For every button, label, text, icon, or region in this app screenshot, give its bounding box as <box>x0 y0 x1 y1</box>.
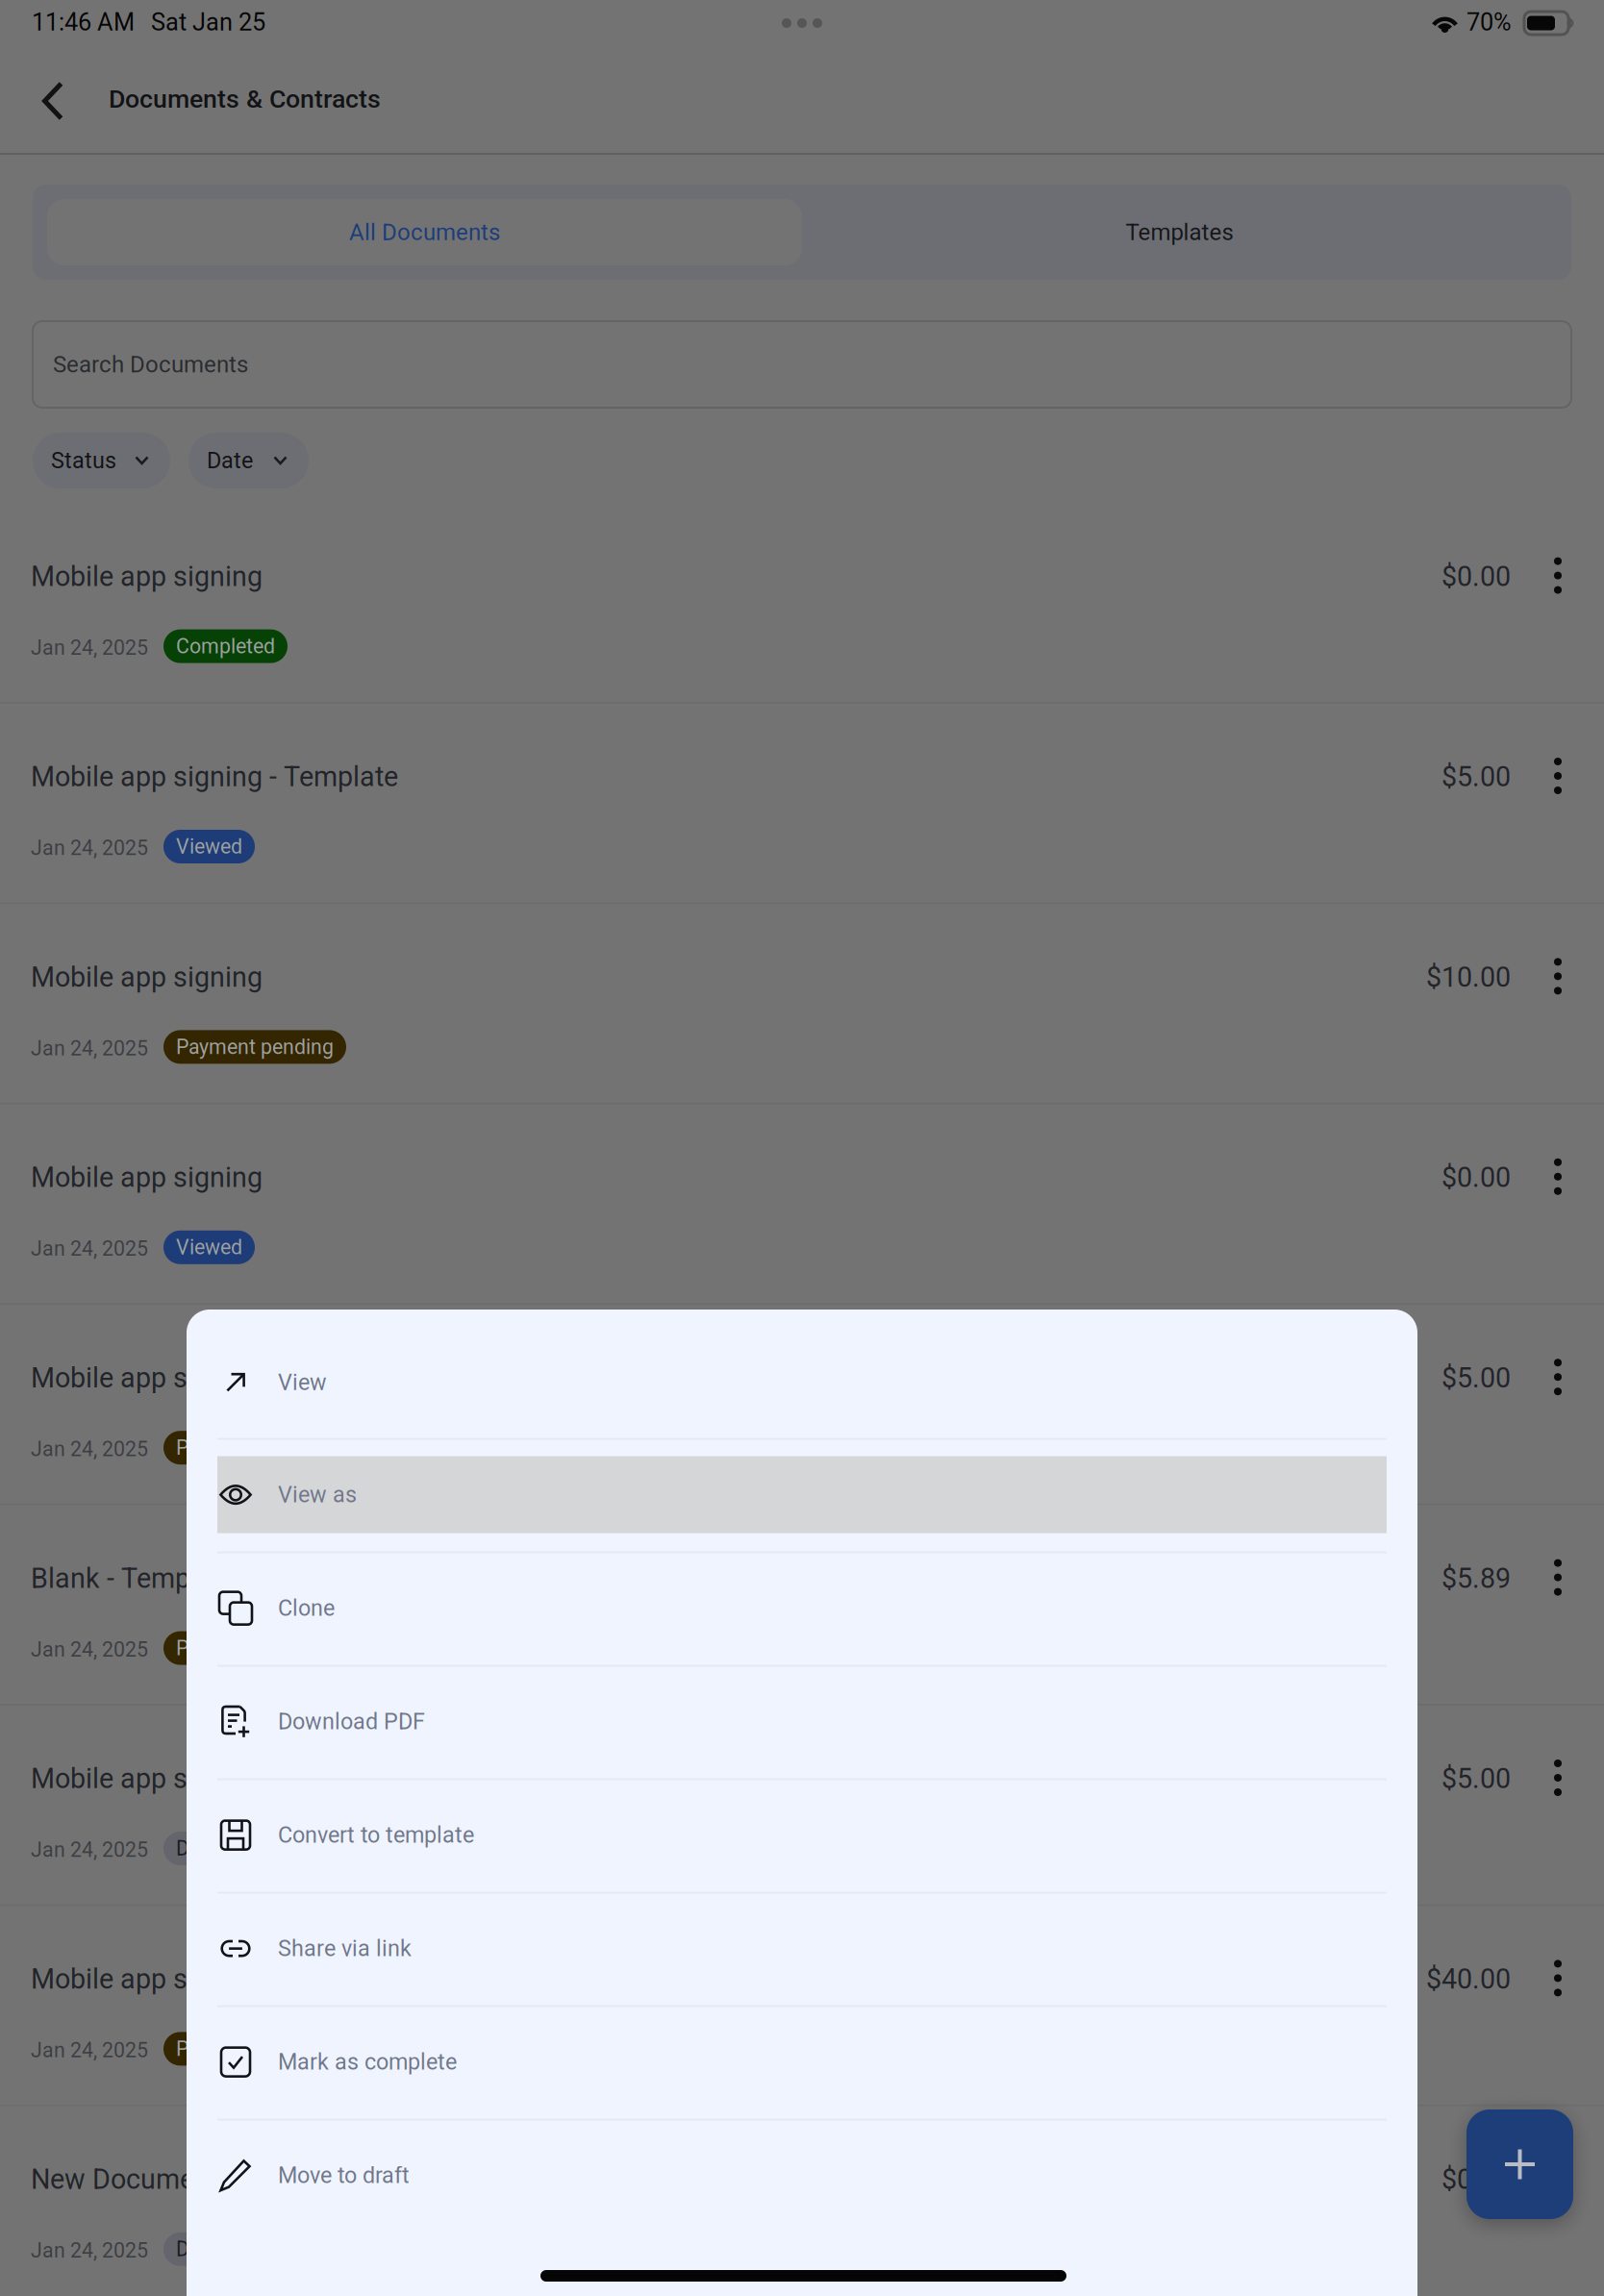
staticText: View as <box>278 1482 357 1508</box>
button[interactable]: More options <box>1519 2140 1596 2217</box>
button[interactable]: All Documents <box>47 199 802 265</box>
button[interactable]: Templates <box>802 199 1557 265</box>
button[interactable]: Mobile app signing <box>0 1704 1481 1904</box>
staticText: $5.00 <box>1441 761 1511 793</box>
staticText: $5.00 <box>1441 1763 1511 1795</box>
staticText: Mark as complete <box>278 2049 457 2075</box>
staticText: Mobile app signing <box>31 1963 263 1995</box>
button[interactable]: Back <box>11 59 95 143</box>
staticText: Clone <box>278 1595 335 1621</box>
button[interactable]: Download PDF <box>187 1665 1417 1778</box>
staticText: Templates <box>1126 219 1233 246</box>
staticText: Mobile app signing <box>31 1161 263 1194</box>
staticText: All Documents <box>349 219 500 246</box>
staticText: Date <box>207 447 253 474</box>
staticText: $0.00 <box>1441 2163 1511 2196</box>
staticText: Payment pending <box>176 1436 334 1460</box>
staticText: Payment pending <box>176 1035 334 1059</box>
button[interactable]: Mobile app signing <box>0 1904 1481 2104</box>
staticText: View <box>278 1369 327 1395</box>
staticText: Convert to template <box>278 1822 474 1848</box>
staticText: Viewed <box>176 1235 242 1259</box>
staticText: 11:46 AM <box>32 8 135 36</box>
button[interactable]: Status <box>33 433 170 488</box>
staticText: Mobile app signing - Template <box>31 761 398 793</box>
staticText: Jan 24, 2025 <box>31 2038 148 2062</box>
staticText: Jan 24, 2025 <box>31 1036 148 1060</box>
button[interactable]: Clone <box>187 1551 1417 1665</box>
staticText: Completed <box>176 634 275 658</box>
button[interactable]: More options <box>1519 1138 1596 1215</box>
button[interactable]: Convert to template <box>187 1778 1417 1892</box>
staticText: Jan 24, 2025 <box>31 1437 148 1461</box>
staticText: Payment pending <box>176 1636 334 1660</box>
button[interactable]: More options <box>1519 537 1596 614</box>
button[interactable]: More options <box>1519 1739 1596 1816</box>
button[interactable]: New Document <box>0 2104 1481 2296</box>
staticText: Status <box>51 447 116 474</box>
staticText: Documents & Contracts <box>109 84 381 114</box>
staticText: Jan 24, 2025 <box>31 1838 148 1862</box>
button[interactable]: Share via link <box>187 1892 1417 2005</box>
button[interactable]: Mobile app signing <box>0 502 1481 702</box>
staticText: Mobile app signing <box>31 1763 263 1795</box>
staticText: Blank - Template <box>31 1562 236 1595</box>
button[interactable]: Mobile app signing - Template <box>0 702 1481 902</box>
button[interactable]: Mobile app signing <box>0 902 1481 1103</box>
button[interactable]: Search Documents <box>33 321 1571 408</box>
button[interactable]: Move to draft <box>187 2119 1417 2232</box>
staticText: Mobile app signing <box>31 961 263 993</box>
staticText: Share via link <box>278 1935 412 1962</box>
staticText: Download PDF <box>278 1708 425 1735</box>
button[interactable]: View <box>187 1310 1417 1438</box>
staticText: $5.89 <box>1441 1562 1511 1595</box>
staticText: $5.00 <box>1441 1362 1511 1394</box>
button[interactable]: Date <box>188 433 309 488</box>
staticText: Jan 24, 2025 <box>31 836 148 860</box>
button[interactable]: Mobile app signing <box>0 1303 1481 1503</box>
button[interactable]: More options <box>1519 1339 1596 1415</box>
button[interactable]: View as <box>187 1438 1417 1551</box>
staticText: Jan 24, 2025 <box>31 2239 148 2263</box>
button[interactable]: New document <box>1466 2109 1573 2219</box>
staticText: Jan 24, 2025 <box>31 636 148 660</box>
button[interactable]: More options <box>1519 1539 1596 1616</box>
staticText: Draft <box>176 1836 221 1860</box>
staticText: $0.00 <box>1441 1161 1511 1194</box>
button[interactable]: More options <box>1519 938 1596 1015</box>
staticText: Payment pending <box>176 2037 334 2061</box>
staticText: Sat Jan 25 <box>151 8 265 36</box>
staticText: 70% <box>1466 8 1512 36</box>
staticText: $40.00 <box>1426 1963 1511 1995</box>
staticText: Jan 24, 2025 <box>31 1237 148 1261</box>
staticText: Search Documents <box>53 351 248 378</box>
button[interactable]: More options <box>1519 1940 1596 2017</box>
button[interactable]: More options <box>1519 737 1596 814</box>
staticText: Move to draft <box>278 2162 410 2189</box>
staticText: Viewed <box>176 835 242 859</box>
staticText: Draft <box>176 2237 221 2261</box>
staticText: Mobile app signing <box>31 1362 263 1394</box>
staticText: Mobile app signing <box>31 560 263 593</box>
staticText: $0.00 <box>1441 560 1511 593</box>
button[interactable]: Mobile app signing <box>0 1103 1481 1303</box>
staticText: Jan 24, 2025 <box>31 1637 148 1662</box>
staticText: $10.00 <box>1426 961 1511 993</box>
staticText: New Document <box>31 2163 218 2196</box>
button[interactable]: Mark as complete <box>187 2005 1417 2119</box>
button[interactable]: Blank - Template <box>0 1503 1481 1704</box>
